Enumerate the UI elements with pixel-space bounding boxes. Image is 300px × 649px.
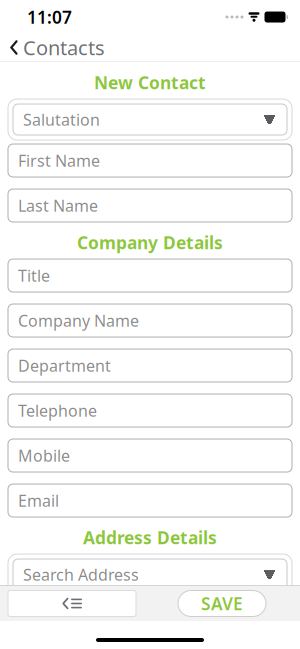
staticText: Last Name	[18, 195, 98, 216]
button[interactable]: Salutation	[8, 99, 292, 140]
staticText: First Name	[18, 150, 100, 171]
staticText: 11:07	[27, 5, 72, 28]
button[interactable]: First Name	[8, 144, 292, 177]
button[interactable]: SAVE	[178, 590, 266, 616]
button[interactable]: Telephone	[8, 394, 292, 427]
button[interactable]: Department	[8, 349, 292, 382]
staticText: SAVE	[201, 592, 243, 615]
staticText: Company Name	[18, 310, 139, 331]
button[interactable]: Email	[8, 484, 292, 517]
button[interactable]: Back	[8, 590, 136, 616]
staticText: Mobile	[18, 445, 70, 466]
button[interactable]: Last Name	[8, 189, 292, 222]
staticText: Telephone	[18, 400, 97, 421]
staticText: Title	[18, 265, 50, 286]
staticText: Salutation	[23, 109, 100, 130]
staticText: Department	[18, 355, 111, 376]
staticText: Search Address	[23, 564, 139, 585]
staticText: New Contact	[94, 71, 206, 94]
staticText: Address Details	[83, 526, 217, 549]
button[interactable]: Search Address	[8, 554, 292, 595]
button[interactable]: Company Name	[8, 304, 292, 337]
staticText: Company Details	[77, 231, 223, 254]
button[interactable]: Mobile	[8, 439, 292, 472]
staticText: Email	[18, 490, 59, 511]
button[interactable]: Contacts	[0, 30, 105, 65]
button[interactable]: Title	[8, 259, 292, 292]
staticText: Contacts	[23, 34, 105, 61]
